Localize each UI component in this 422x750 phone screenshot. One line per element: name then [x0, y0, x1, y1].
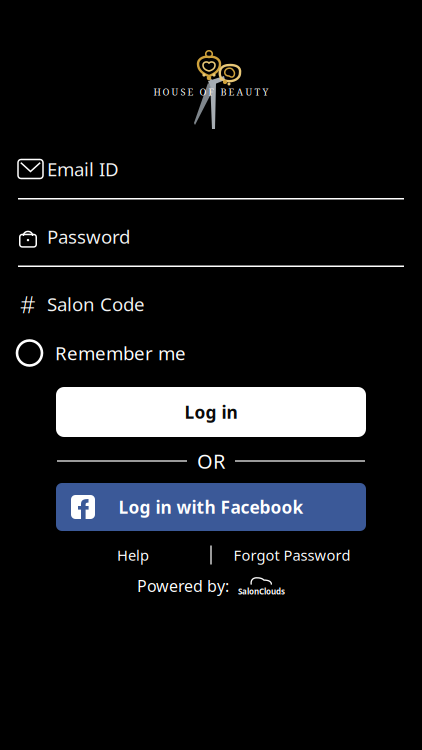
staticText: H O U S E O F B E A U T Y [153, 86, 268, 98]
button[interactable]: Help [98, 543, 168, 567]
staticText: OR [197, 448, 225, 474]
staticText: Password [47, 224, 130, 249]
staticText: Help [117, 545, 149, 565]
button[interactable]: Remember me [0, 336, 422, 370]
staticText: Remember me [55, 341, 186, 365]
staticText: SalonClouds [238, 586, 285, 597]
staticText: Email ID [47, 157, 119, 181]
staticText: Powered by: [137, 575, 229, 596]
staticText: Log in with Facebook [118, 495, 303, 518]
staticText: Forgot Password [233, 545, 350, 565]
staticText: # [20, 288, 36, 320]
button[interactable]: Forgot Password [227, 543, 357, 567]
button[interactable]: Log in with Facebook [56, 483, 366, 531]
staticText: Salon Code [47, 292, 145, 316]
button[interactable]: Log in [56, 387, 366, 437]
staticText: Log in [184, 400, 237, 423]
